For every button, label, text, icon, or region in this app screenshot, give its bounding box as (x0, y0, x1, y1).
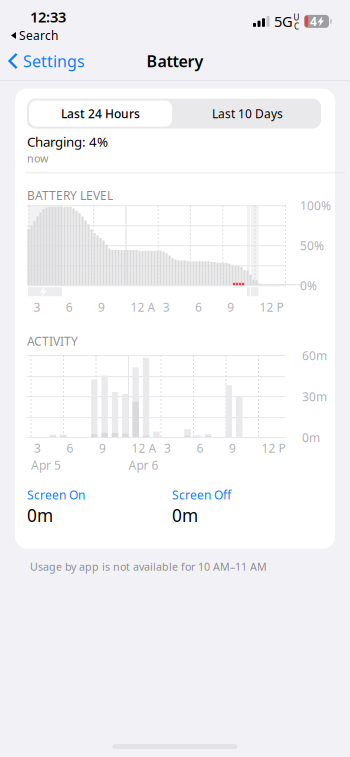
staticText: U (293, 12, 299, 23)
staticText: 9 (227, 299, 234, 315)
staticText: 5G (274, 12, 293, 31)
staticText: Screen On (27, 487, 85, 503)
staticText: Usage by app is not available for 10 AM–… (30, 560, 267, 574)
staticText: 6 (66, 299, 73, 315)
staticText: Apr 5 (31, 457, 61, 473)
button[interactable]: Screen On (27, 487, 172, 527)
staticText: 12:33 (30, 7, 66, 26)
staticText: Last 10 Days (212, 106, 283, 121)
staticText: 12 P (260, 299, 284, 315)
staticText: Settings (23, 50, 85, 72)
staticText: 60m (302, 348, 327, 363)
staticText: Battery (146, 50, 203, 72)
staticText: 0m (172, 504, 198, 527)
staticText: 6 (196, 440, 203, 456)
staticText: 12 P (261, 440, 285, 456)
staticText: 9 (99, 440, 106, 456)
staticText: 9 (98, 299, 105, 315)
staticText: 3 (164, 440, 171, 456)
staticText: 12 A (131, 440, 156, 456)
staticText: 12 A (130, 299, 155, 315)
staticText: 9 (229, 440, 236, 456)
staticText: 3 (34, 440, 41, 456)
button[interactable]: Last 10 Days (174, 99, 321, 129)
staticText: 0m (302, 430, 320, 445)
button[interactable]: Settings (0, 42, 85, 80)
button[interactable]: Screen Off (172, 487, 334, 527)
staticText: 4 (310, 13, 317, 29)
staticText: Search (19, 27, 58, 43)
staticText: BATTERY LEVEL (27, 187, 113, 203)
staticText: C (294, 21, 299, 32)
button[interactable]: Last 24 Hours (27, 99, 174, 129)
staticText: 3 (163, 299, 170, 315)
staticText: ACTIVITY (27, 333, 78, 349)
staticText: 100% (300, 198, 331, 214)
staticText: 30m (302, 389, 327, 404)
staticText: 3 (33, 299, 40, 315)
staticText: Screen Off (172, 487, 231, 503)
staticText: 6 (66, 440, 73, 456)
staticText: 0m (27, 504, 53, 527)
staticText: Last 24 Hours (61, 106, 140, 121)
staticText: 0% (300, 278, 317, 294)
staticText: 6 (195, 299, 202, 315)
staticText: Apr 6 (128, 457, 158, 473)
staticText: 50% (300, 238, 324, 254)
staticText: Charging: 4% (27, 133, 108, 150)
staticText: now (27, 151, 48, 165)
